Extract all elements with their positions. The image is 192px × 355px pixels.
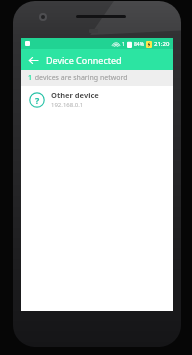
- staticText: 21:20: [154, 40, 170, 48]
- staticText: 84%: [134, 41, 144, 48]
- button[interactable]: ?: [21, 86, 173, 113]
- staticText: Device Connected: [46, 54, 122, 66]
- staticText: devices are sharing netword: [33, 73, 128, 83]
- staticText: 192.168.0.1: [51, 101, 84, 109]
- staticText: Other device: [51, 90, 99, 100]
- staticText: 1: [28, 73, 33, 83]
- button[interactable]: Back: [24, 51, 42, 69]
- staticText: ?: [35, 94, 40, 106]
- staticText: 1: [122, 41, 125, 48]
